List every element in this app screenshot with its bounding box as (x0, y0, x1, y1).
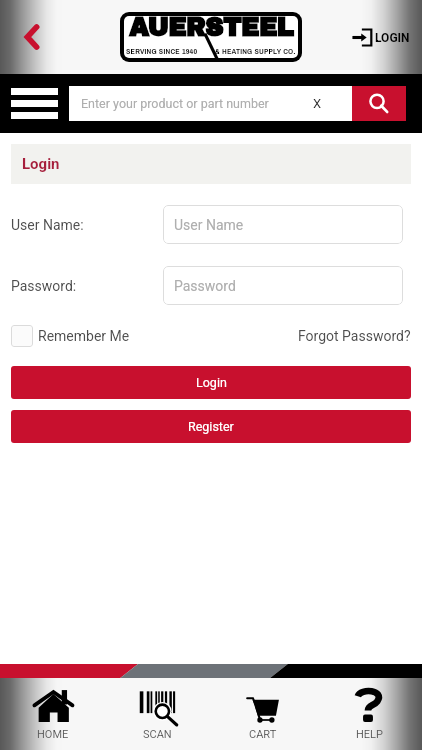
button[interactable]: HELP (316, 678, 422, 750)
staticText: User Name (174, 217, 244, 233)
staticText: Password: (11, 278, 77, 294)
button[interactable]: Back (14, 19, 50, 55)
button[interactable]: Search (352, 86, 406, 121)
button[interactable]: CART (210, 678, 316, 750)
button[interactable]: Forgot Password? (298, 328, 411, 344)
button[interactable]: User Name (163, 205, 403, 244)
button[interactable]: Enter your product or part number (69, 86, 352, 121)
button[interactable]: Login (11, 366, 411, 399)
staticText: SERVING SINCE 1940 (126, 46, 198, 57)
button[interactable]: HOME (0, 678, 105, 750)
staticText: AUERSTEEL (124, 16, 298, 41)
button[interactable]: SCAN (105, 678, 210, 750)
button[interactable]: Password (163, 266, 403, 305)
staticText: Remember Me (38, 328, 130, 344)
button[interactable]: Remember Me (11, 325, 130, 347)
staticText: CART (249, 728, 277, 741)
staticText: Login (22, 155, 60, 173)
staticText: HOME (37, 728, 69, 741)
staticText: Register (188, 419, 234, 434)
staticText: X (313, 96, 322, 111)
staticText: Password (174, 278, 236, 294)
staticText: & HEATING SUPPLY CO. (215, 46, 296, 57)
button[interactable]: LOGIN (352, 27, 410, 48)
staticText: User Name: (11, 217, 84, 233)
staticText: Login (196, 375, 227, 390)
button[interactable]: Register (11, 410, 411, 443)
staticText: SCAN (143, 728, 172, 741)
staticText: LOGIN (375, 31, 410, 45)
staticText: Enter your product or part number (81, 96, 313, 111)
staticText: HELP (356, 728, 383, 741)
button[interactable]: Menu (11, 88, 58, 119)
